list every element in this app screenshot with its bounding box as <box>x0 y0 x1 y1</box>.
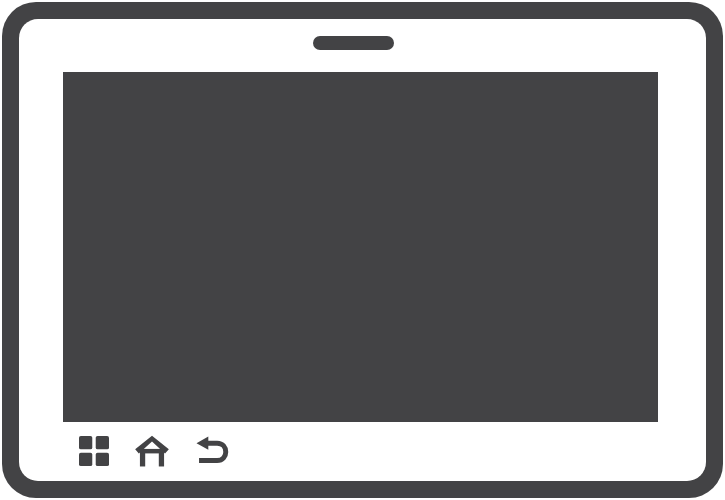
button[interactable]: Back <box>190 429 234 473</box>
button[interactable]: Home <box>130 429 174 473</box>
button[interactable]: Apps <box>72 429 116 473</box>
